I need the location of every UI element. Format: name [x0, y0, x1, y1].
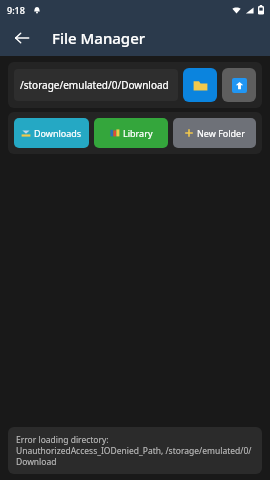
staticText: Downloads — [34, 127, 82, 139]
staticText: Library — [123, 127, 153, 139]
button[interactable]: Browse folder — [183, 68, 217, 102]
button[interactable]: Error loading directory: UnauthorizedAcc… — [8, 427, 262, 474]
staticText: Error loading directory: UnauthorizedAcc… — [16, 434, 254, 467]
staticText: /storage/emulated/0/Download — [20, 78, 169, 92]
staticText: File Manager — [52, 28, 146, 48]
button[interactable]: Library — [94, 118, 168, 148]
button[interactable]: Go up — [222, 68, 256, 102]
staticText: New Folder — [197, 127, 245, 139]
button[interactable]: Downloads — [14, 118, 89, 148]
button[interactable]: /storage/emulated/0/Download — [14, 69, 178, 101]
button[interactable]: New Folder — [173, 118, 256, 148]
staticText: 9:18 — [7, 4, 25, 16]
button[interactable]: Back — [6, 22, 38, 54]
